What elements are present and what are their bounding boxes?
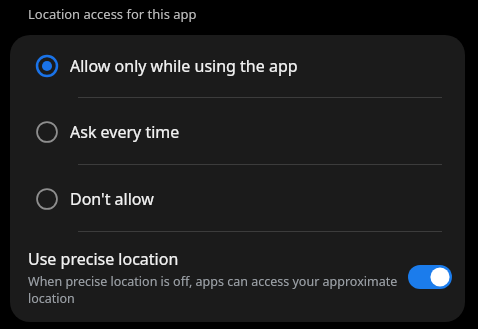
button[interactable]: Ask every time	[10, 114, 465, 149]
staticText: Ask every time	[70, 121, 180, 143]
staticText: When precise location is off, apps can a…	[28, 273, 400, 307]
staticText: Allow only while using the app	[70, 55, 298, 77]
button[interactable]: Use precise location	[10, 232, 465, 322]
staticText: Don't allow	[70, 188, 154, 210]
staticText: Use precise location	[28, 248, 179, 270]
button[interactable]: Don't allow	[10, 181, 465, 216]
button[interactable]: Use precise location toggle	[408, 265, 452, 289]
button[interactable]: Allow only while using the app	[10, 41, 465, 91]
staticText: Location access for this app	[28, 5, 197, 23]
